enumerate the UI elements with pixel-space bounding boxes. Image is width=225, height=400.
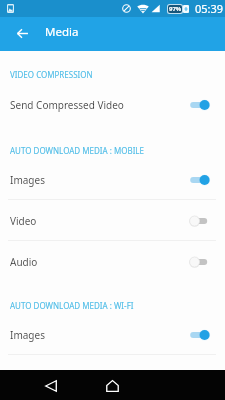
button[interactable]: Back (5, 16, 39, 50)
button[interactable]: Images (0, 314, 225, 355)
staticText: Audio (10, 255, 38, 269)
button[interactable]: Back (38, 375, 63, 397)
staticText: 05:39 (195, 1, 224, 16)
staticText: 97% (169, 5, 182, 13)
staticText: Video (10, 214, 37, 228)
button[interactable]: Images (0, 159, 225, 200)
staticText: Images (10, 173, 45, 187)
staticText: Media (45, 24, 79, 40)
button[interactable]: Video (0, 200, 225, 241)
staticText: VIDEO COMPRESSION (10, 69, 93, 80)
staticText: AUTO DOWNLOAD MEDIA : MOBILE (10, 145, 144, 156)
button[interactable]: Send Compressed Video (0, 84, 225, 125)
staticText: Images (10, 328, 45, 342)
button[interactable]: Home (100, 375, 125, 397)
staticText: Send Compressed Video (10, 98, 124, 112)
staticText: AUTO DOWNLOAD MEDIA : WI-FI (10, 300, 134, 311)
button[interactable]: Audio (0, 241, 225, 282)
